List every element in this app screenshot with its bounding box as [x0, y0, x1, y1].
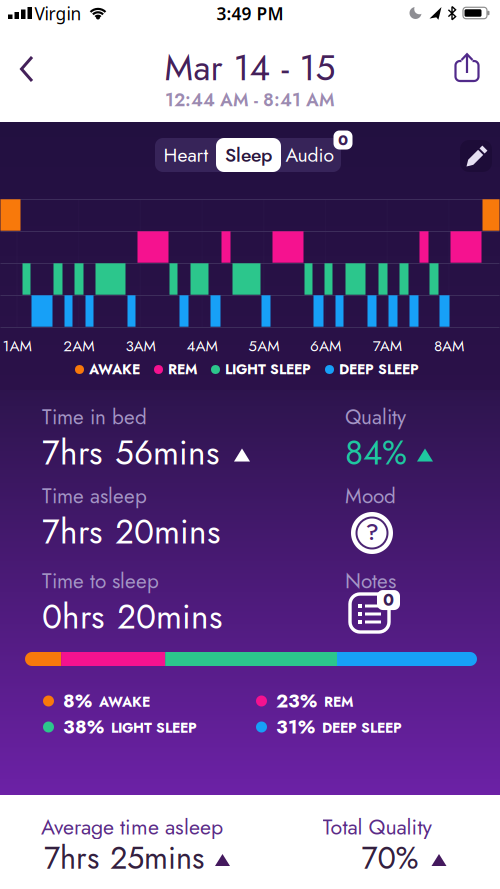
button[interactable]: Audio	[279, 138, 341, 172]
staticText: LIGHT SLEEP	[111, 718, 197, 738]
staticText: 4AM	[187, 335, 218, 357]
staticText: Notes	[345, 566, 396, 596]
staticText: Mood	[345, 481, 396, 511]
staticText: DEEP SLEEP	[322, 718, 402, 738]
staticText: 31%	[276, 713, 315, 740]
staticText: 7hrs	[42, 429, 102, 477]
staticText: DEEP SLEEP	[339, 359, 419, 380]
staticText: 56mins	[115, 429, 219, 477]
staticText: 38%	[63, 713, 104, 740]
staticText: 0	[338, 129, 348, 151]
staticText: 0hrs	[42, 593, 104, 641]
staticText: 2AM	[63, 335, 94, 357]
staticText: 23%	[276, 687, 317, 714]
staticText: LIGHT SLEEP	[225, 359, 311, 380]
staticText: Virgin	[34, 2, 81, 25]
button[interactable]: ?	[351, 512, 393, 554]
staticText: 12:44 AM - 8:41 AM	[165, 87, 335, 113]
button[interactable]	[460, 140, 492, 172]
staticText: AWAKE	[99, 692, 150, 712]
staticText: 20mins	[115, 508, 220, 556]
staticText: Time in bed	[42, 402, 147, 432]
staticText: 84%	[345, 429, 407, 477]
staticText: 3:49 PM	[216, 2, 283, 25]
staticText: 7hrs	[42, 508, 102, 556]
staticText: 20mins	[117, 593, 222, 641]
staticText: 0	[383, 588, 394, 612]
button[interactable]	[450, 53, 484, 87]
staticText: 70%	[361, 836, 418, 880]
staticText: 6AM	[310, 335, 341, 357]
staticText: 1AM	[2, 335, 31, 357]
staticText: Audio	[285, 141, 334, 169]
staticText: 5AM	[248, 335, 279, 357]
staticText: Heart	[163, 141, 208, 169]
staticText: 25mins	[110, 836, 204, 880]
button[interactable]: Sleep	[216, 138, 281, 172]
staticText: Mar 14 - 15	[164, 42, 335, 94]
staticText: Time to sleep	[42, 566, 159, 596]
staticText: 3AM	[125, 335, 155, 357]
staticText: Time asleep	[42, 481, 147, 511]
staticText: Sleep	[225, 141, 272, 169]
staticText: 8AM	[434, 335, 464, 357]
staticText: AWAKE	[89, 359, 140, 380]
staticText: 8%	[63, 687, 92, 714]
button[interactable]	[20, 56, 46, 82]
staticText: ?	[365, 516, 378, 548]
staticText: REM	[324, 692, 353, 712]
staticText: REM	[168, 359, 197, 380]
button[interactable]: 0	[350, 588, 400, 636]
staticText: Quality	[345, 402, 406, 432]
staticText: 7hrs	[44, 836, 99, 880]
staticText: 7AM	[373, 335, 402, 357]
button[interactable]: Heart	[155, 138, 217, 172]
staticText: Total Quality	[322, 812, 431, 842]
staticText: Average time asleep	[41, 812, 223, 842]
